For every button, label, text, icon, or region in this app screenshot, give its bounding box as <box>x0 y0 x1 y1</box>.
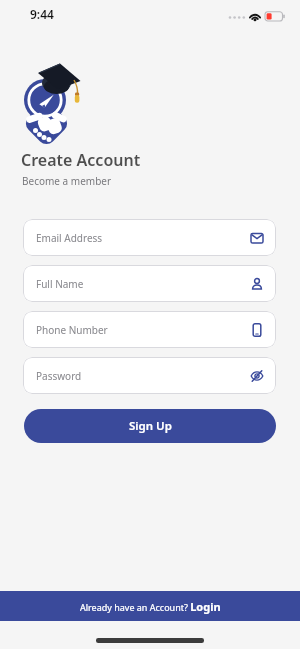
button[interactable]: Already have an Account? Login <box>0 591 300 621</box>
staticText: Password <box>36 369 82 383</box>
button[interactable]: Password <box>23 357 276 394</box>
staticText: Sign Up <box>129 418 172 434</box>
staticText: Create Account <box>21 149 141 171</box>
button[interactable]: Phone Number <box>23 311 276 348</box>
staticText: Phone Number <box>36 323 108 337</box>
staticText: Already have an Account? Login <box>80 599 221 614</box>
staticText: Email Address <box>36 231 103 245</box>
button[interactable]: Email Address <box>23 219 276 256</box>
staticText: 9:44 <box>30 6 54 22</box>
staticText: Full Name <box>36 277 84 291</box>
button[interactable]: Full Name <box>23 265 276 302</box>
button[interactable]: Sign Up <box>24 409 276 443</box>
staticText: Become a member <box>22 174 112 188</box>
